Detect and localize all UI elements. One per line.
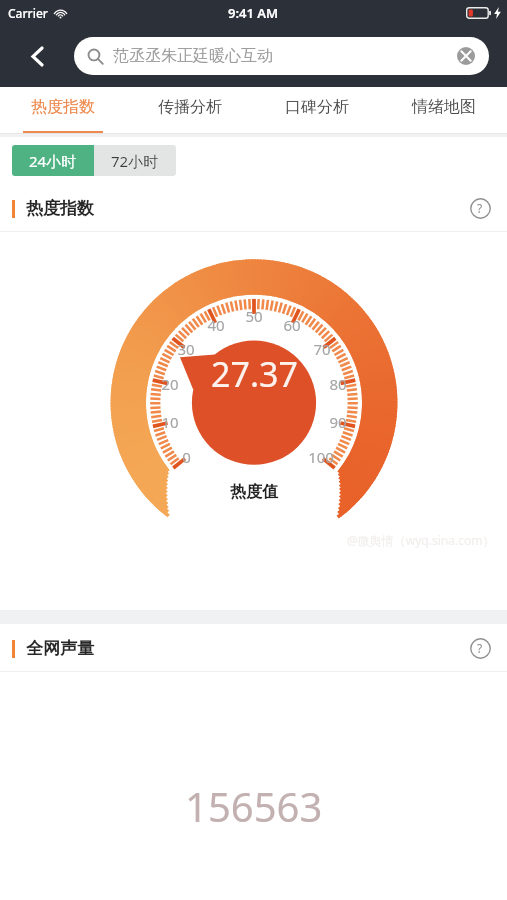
button[interactable]: Help: 全网声量 — [467, 635, 493, 661]
staticText: 范丞丞朱正廷暖心互动 — [113, 46, 456, 66]
staticText: 40 — [207, 315, 225, 335]
button[interactable]: 范丞丞朱正廷暖心互动 — [74, 37, 489, 75]
staticText: Carrier — [8, 5, 48, 21]
staticText: 30 — [177, 339, 195, 359]
staticText: 100 — [308, 447, 334, 467]
button[interactable]: 传播分析 — [126, 87, 253, 134]
staticText: 10 — [161, 412, 179, 432]
staticText: 60 — [283, 315, 301, 335]
button[interactable]: Help: 热度指数 — [467, 195, 493, 221]
staticText: @微舆情（wyq.sina.com） — [347, 532, 495, 548]
staticText: 0 — [182, 447, 191, 467]
button[interactable]: 72小时 — [94, 145, 176, 176]
staticText: 热度指数 — [31, 97, 95, 117]
button[interactable]: 情绪地图 — [380, 87, 507, 134]
button[interactable]: 口碑分析 — [253, 87, 380, 134]
staticText: 80 — [329, 374, 347, 394]
staticText: 20 — [161, 374, 179, 394]
button[interactable]: 热度指数 — [0, 87, 126, 134]
staticText: 传播分析 — [158, 97, 222, 117]
staticText: 全网声量 — [26, 638, 94, 659]
staticText: 热度指数 — [26, 198, 94, 219]
staticText: 24小时 — [29, 151, 77, 171]
staticText: 口碑分析 — [285, 97, 349, 117]
staticText: 90 — [329, 412, 347, 432]
button[interactable]: 24小时 — [12, 145, 94, 176]
staticText: 9:41 AM — [228, 4, 279, 22]
staticText: 热度值 — [230, 482, 278, 502]
staticText: ? — [477, 640, 483, 656]
staticText: 情绪地图 — [412, 97, 476, 117]
staticText: 156563 — [185, 779, 323, 833]
staticText: 72小时 — [111, 151, 159, 171]
staticText: ? — [477, 200, 483, 216]
staticText: 50 — [245, 306, 263, 326]
staticText: 27.37 — [211, 351, 298, 397]
staticText: 70 — [313, 339, 331, 359]
button[interactable]: Back — [0, 25, 74, 87]
button[interactable]: Clear search — [456, 46, 476, 66]
